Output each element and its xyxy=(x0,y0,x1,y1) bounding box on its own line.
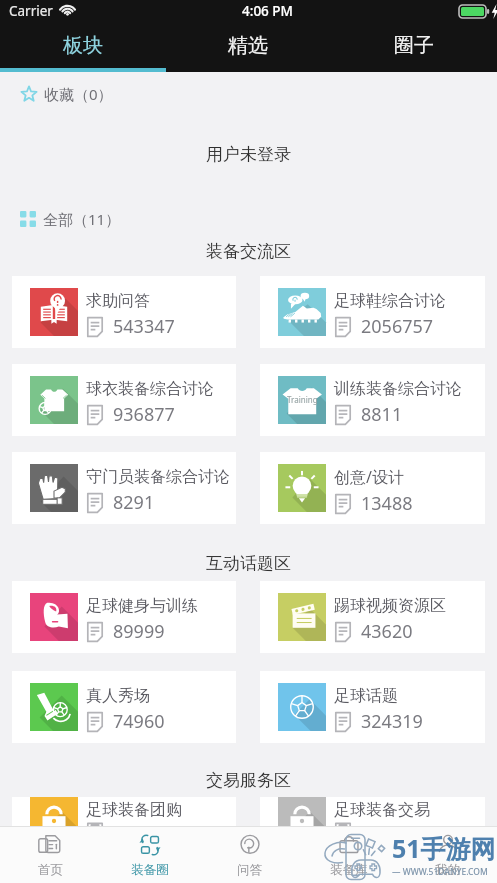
staticText: 板块 xyxy=(63,33,103,58)
button[interactable]: 踢球视频资源区 xyxy=(260,581,485,653)
button[interactable]: 装备库 xyxy=(299,827,398,883)
staticText: 足球鞋综合讨论 xyxy=(334,291,446,311)
button[interactable]: 球衣装备综合讨论 xyxy=(12,364,236,436)
staticText: — WWW.51DANYE.COM — xyxy=(392,866,497,883)
button[interactable]: 全部（11） xyxy=(0,192,497,246)
button[interactable]: 求助问答 xyxy=(12,276,236,348)
staticText: 足球健身与训练 xyxy=(86,596,198,616)
staticText: 精选 xyxy=(228,33,268,58)
button[interactable]: 问答 xyxy=(200,827,299,883)
button[interactable]: 精选 xyxy=(165,22,331,68)
staticText: 8291 xyxy=(113,490,155,515)
staticText: 8811 xyxy=(361,402,403,427)
button[interactable]: 足球装备团购 xyxy=(12,797,236,826)
button[interactable]: 足球健身与训练 xyxy=(12,581,236,653)
staticText: 我的 xyxy=(435,862,460,878)
staticText: 13488 xyxy=(361,491,413,516)
staticText: 圈子 xyxy=(394,33,434,58)
staticText: 装备圈 xyxy=(131,862,169,878)
staticText: 守门员装备综合讨论 xyxy=(86,467,230,487)
staticText: 真人秀场 xyxy=(86,686,150,706)
button[interactable]: 我的 xyxy=(398,827,497,883)
staticText: 足球装备团购 xyxy=(86,800,182,820)
staticText: 足球装备交易 xyxy=(334,800,430,820)
button[interactable]: 足球装备交易 xyxy=(260,797,485,826)
staticText: 全部（11） xyxy=(43,209,121,229)
staticText: 交易服务区 xyxy=(206,770,291,791)
button[interactable]: 首页 xyxy=(0,827,100,883)
staticText: 用户未登录 xyxy=(206,144,291,165)
staticText: 求助问答 xyxy=(86,291,150,311)
button[interactable]: 真人秀场 xyxy=(12,671,236,743)
staticText: Carrier xyxy=(9,2,53,20)
staticText: 首页 xyxy=(38,862,63,878)
staticText: 踢球视频资源区 xyxy=(334,596,446,616)
button[interactable]: 创意/设计 xyxy=(260,452,485,524)
staticText: Training xyxy=(287,394,318,405)
staticText: 2056757 xyxy=(361,314,434,339)
button[interactable]: 装备圈 xyxy=(100,827,200,883)
staticText: 324319 xyxy=(361,709,423,734)
staticText: 89999 xyxy=(113,619,165,644)
staticText: 74960 xyxy=(113,709,165,734)
staticText: 543347 xyxy=(113,314,175,339)
staticText: 问答 xyxy=(237,862,262,878)
button[interactable]: 守门员装备综合讨论 xyxy=(12,452,236,524)
staticText: 51手游网 xyxy=(392,831,496,865)
staticText: 收藏（0） xyxy=(44,84,113,104)
staticText: 球衣装备综合讨论 xyxy=(86,379,214,399)
staticText: 装备交流区 xyxy=(206,241,291,262)
button[interactable]: 板块 xyxy=(0,22,165,68)
staticText: 43620 xyxy=(361,619,413,644)
staticText: 互动话题区 xyxy=(206,553,291,574)
button[interactable]: 收藏（0） xyxy=(0,72,497,116)
staticText: 足球话题 xyxy=(334,686,398,706)
staticText: 4:06 PM xyxy=(242,2,293,20)
button[interactable]: Training xyxy=(260,364,485,436)
button[interactable]: 足球鞋综合讨论 xyxy=(260,276,485,348)
staticText: 训练装备综合讨论 xyxy=(334,379,462,399)
staticText: 创意/设计 xyxy=(334,466,404,488)
staticText: 936877 xyxy=(113,402,175,427)
button[interactable]: 足球话题 xyxy=(260,671,485,743)
button[interactable]: 圈子 xyxy=(331,22,497,68)
staticText: 装备库 xyxy=(330,862,368,878)
